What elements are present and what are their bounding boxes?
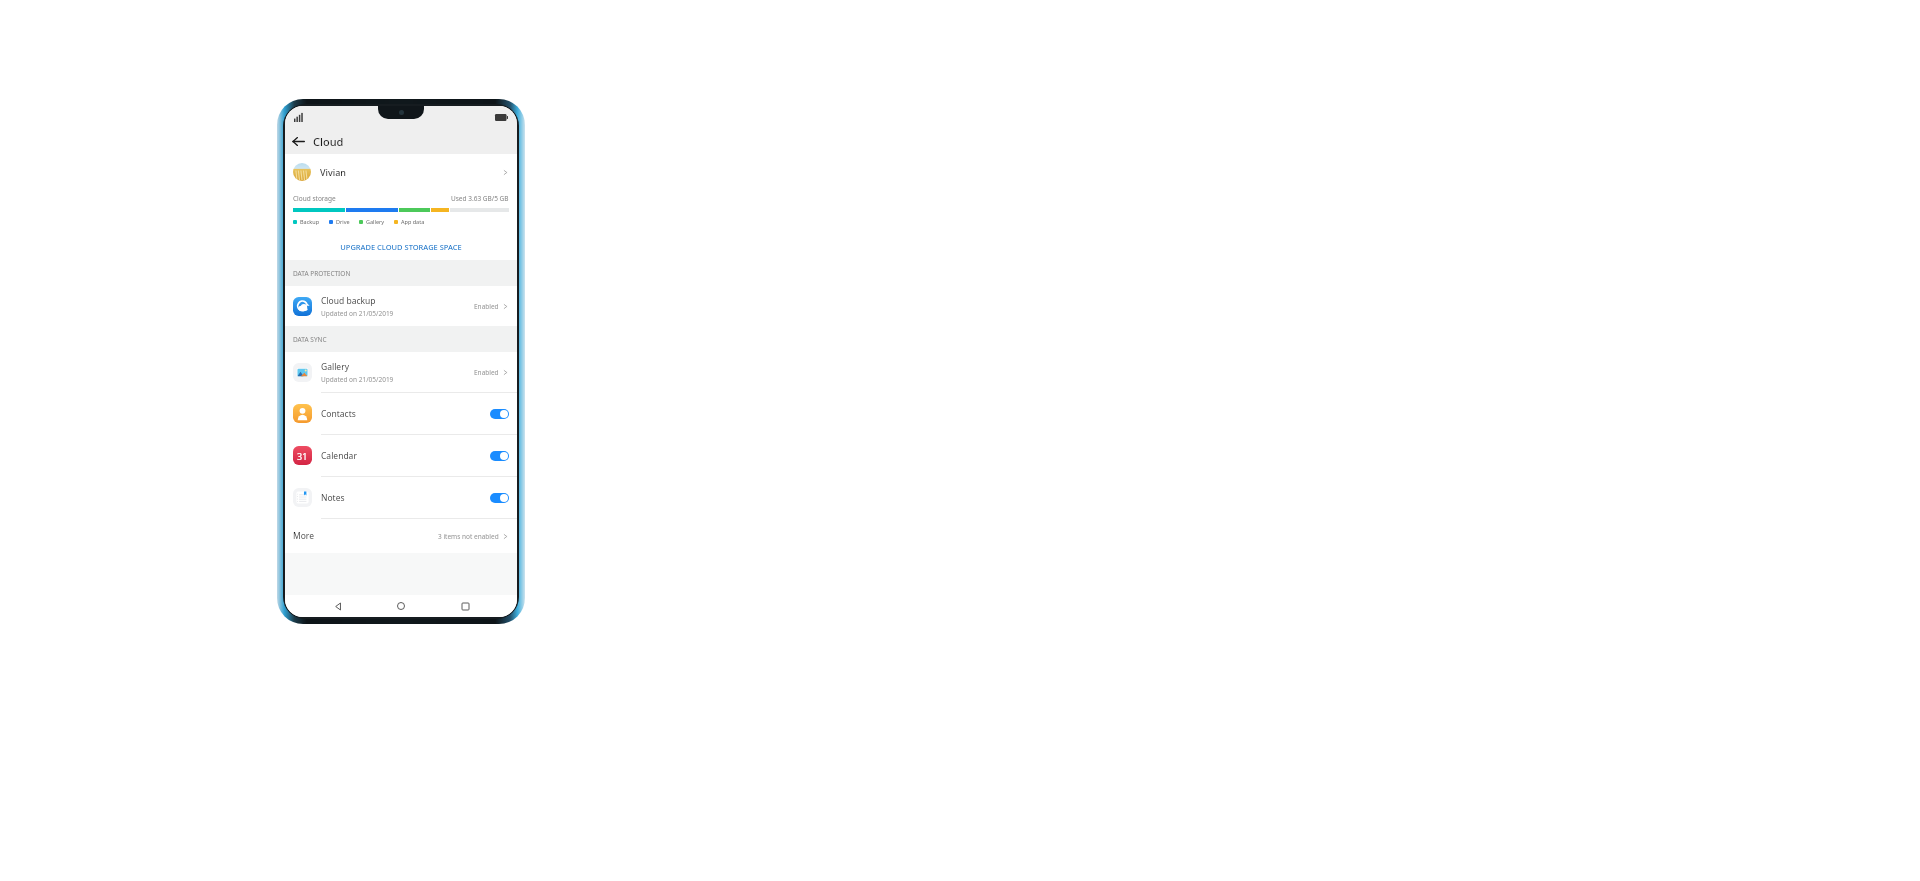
button[interactable]: Toggle on — [490, 409, 509, 419]
staticText: Used 3.63 GB/5 GB — [451, 194, 509, 203]
staticText: Notes — [321, 492, 345, 504]
button[interactable]: Contacts — [285, 393, 517, 434]
staticText: Updated on 21/05/2019 — [321, 375, 394, 384]
button[interactable]: Cloud backup — [285, 286, 517, 326]
staticText: Gallery — [321, 361, 349, 373]
button[interactable]: Notes — [285, 477, 517, 518]
staticText: Enabled — [474, 368, 499, 377]
staticText: DATA PROTECTION — [293, 269, 351, 278]
button[interactable]: Toggle on — [490, 493, 509, 503]
staticText: Enabled — [474, 302, 499, 311]
staticText: DATA SYNC — [293, 335, 327, 344]
staticText: 31 — [297, 450, 308, 462]
button[interactable]: Back — [327, 595, 349, 617]
button[interactable]: Back — [285, 128, 311, 154]
button[interactable]: More — [285, 519, 517, 553]
staticText: Contacts — [321, 408, 356, 420]
staticText: 3 items not enabled — [438, 532, 499, 541]
button[interactable]: UPGRADE CLOUD STORAGE SPACE — [293, 234, 509, 260]
button[interactable]: Gallery — [285, 352, 517, 392]
button[interactable]: Home — [390, 595, 412, 617]
staticText: Calendar — [321, 450, 357, 462]
staticText: Vivian — [320, 166, 346, 178]
staticText: Cloud storage — [293, 194, 336, 203]
staticText: Drive — [336, 218, 350, 225]
staticText: More — [293, 530, 314, 542]
staticText: Cloud — [313, 134, 344, 149]
staticText: Updated on 21/05/2019 — [321, 309, 394, 318]
button[interactable]: Vivian — [285, 154, 517, 190]
staticText: Cloud backup — [321, 295, 376, 307]
staticText: App data — [401, 218, 425, 225]
button[interactable]: 31 — [285, 435, 517, 476]
staticText: UPGRADE CLOUD STORAGE SPACE — [340, 242, 462, 252]
button[interactable]: Recents — [454, 595, 476, 617]
staticText: Gallery — [366, 218, 385, 225]
staticText: Backup — [300, 218, 320, 225]
button[interactable]: Toggle on — [490, 451, 509, 461]
